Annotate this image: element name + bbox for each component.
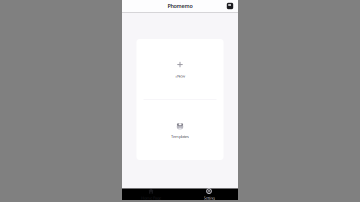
button[interactable]: Home Page <box>122 188 180 200</box>
button[interactable]: Templates <box>136 100 223 160</box>
staticText: Home Page <box>141 195 161 200</box>
staticText: +New <box>175 73 185 79</box>
button[interactable]: My printer <box>226 2 233 9</box>
button[interactable]: +New <box>136 39 223 99</box>
staticText: Setting <box>203 195 214 200</box>
staticText: Phomemo <box>167 2 192 10</box>
button[interactable]: Setting <box>180 188 238 200</box>
staticText: Templates <box>171 134 189 139</box>
